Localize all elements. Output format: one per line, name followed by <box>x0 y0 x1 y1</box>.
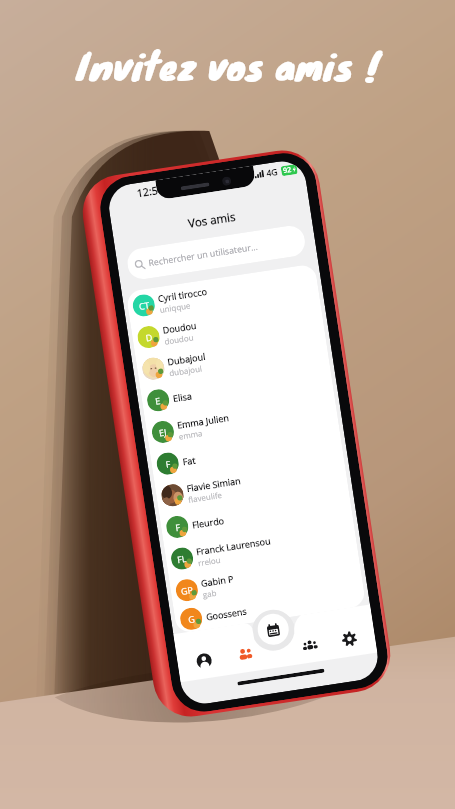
button[interactable]: FL <box>169 517 357 576</box>
staticText: uniqque <box>159 299 192 315</box>
button[interactable]: GP <box>174 548 362 608</box>
button[interactable]: F <box>164 485 353 544</box>
staticText: Doudou <box>162 319 197 336</box>
staticText: emma <box>178 427 203 442</box>
staticText: Goossens <box>205 605 247 623</box>
staticText: 92 <box>282 165 293 176</box>
button[interactable]: CT <box>130 263 319 323</box>
button[interactable]: Profile <box>188 644 219 676</box>
staticText: Franck Laurensou <box>195 534 271 557</box>
staticText: GP <box>180 583 194 597</box>
button[interactable]: F <box>154 422 343 481</box>
button[interactable]: D <box>135 295 324 355</box>
button[interactable]: Calendar <box>256 613 291 648</box>
staticText: G <box>187 612 196 625</box>
staticText: CT <box>138 299 151 312</box>
staticText: Fat <box>182 453 196 467</box>
staticText: dubajoul <box>168 362 203 378</box>
staticText: D <box>145 330 153 343</box>
button[interactable]: Dubajoul <box>140 327 329 386</box>
button[interactable]: Groups <box>293 628 325 660</box>
staticText: Rechercher un utilisateur... <box>148 241 259 269</box>
staticText: flaveulife <box>187 489 223 505</box>
staticText: EJ <box>158 425 168 439</box>
staticText: Cyril tirocco <box>157 285 208 304</box>
staticText: Elisa <box>172 389 193 404</box>
staticText: FL <box>176 552 188 565</box>
button[interactable]: E <box>145 358 334 418</box>
button[interactable]: Friends <box>229 638 261 670</box>
staticText: E <box>154 394 162 407</box>
button[interactable]: G <box>178 580 366 633</box>
staticText: 12:54 <box>136 182 165 200</box>
staticText: rrelou <box>197 554 221 568</box>
staticText: F <box>165 457 172 470</box>
staticText: 4G <box>266 166 279 180</box>
staticText: doudou <box>164 331 195 347</box>
staticText: Gabin P <box>200 572 234 589</box>
button[interactable]: Settings <box>333 623 365 654</box>
staticText: Vos amis <box>187 209 237 232</box>
staticText: Fleurdo <box>191 514 226 531</box>
staticText: gab <box>202 587 217 600</box>
staticText: Dubajoul <box>167 350 207 367</box>
button[interactable]: Rechercher un utilisateur... <box>125 224 307 281</box>
button[interactable]: EJ <box>150 390 338 449</box>
staticText: Emma Julien <box>176 411 230 431</box>
staticText: Flavie Simian <box>186 474 242 494</box>
staticText: Invitez vos amis ! <box>76 37 379 93</box>
button[interactable]: Flavie Simian <box>159 453 348 513</box>
staticText: F <box>174 520 181 533</box>
